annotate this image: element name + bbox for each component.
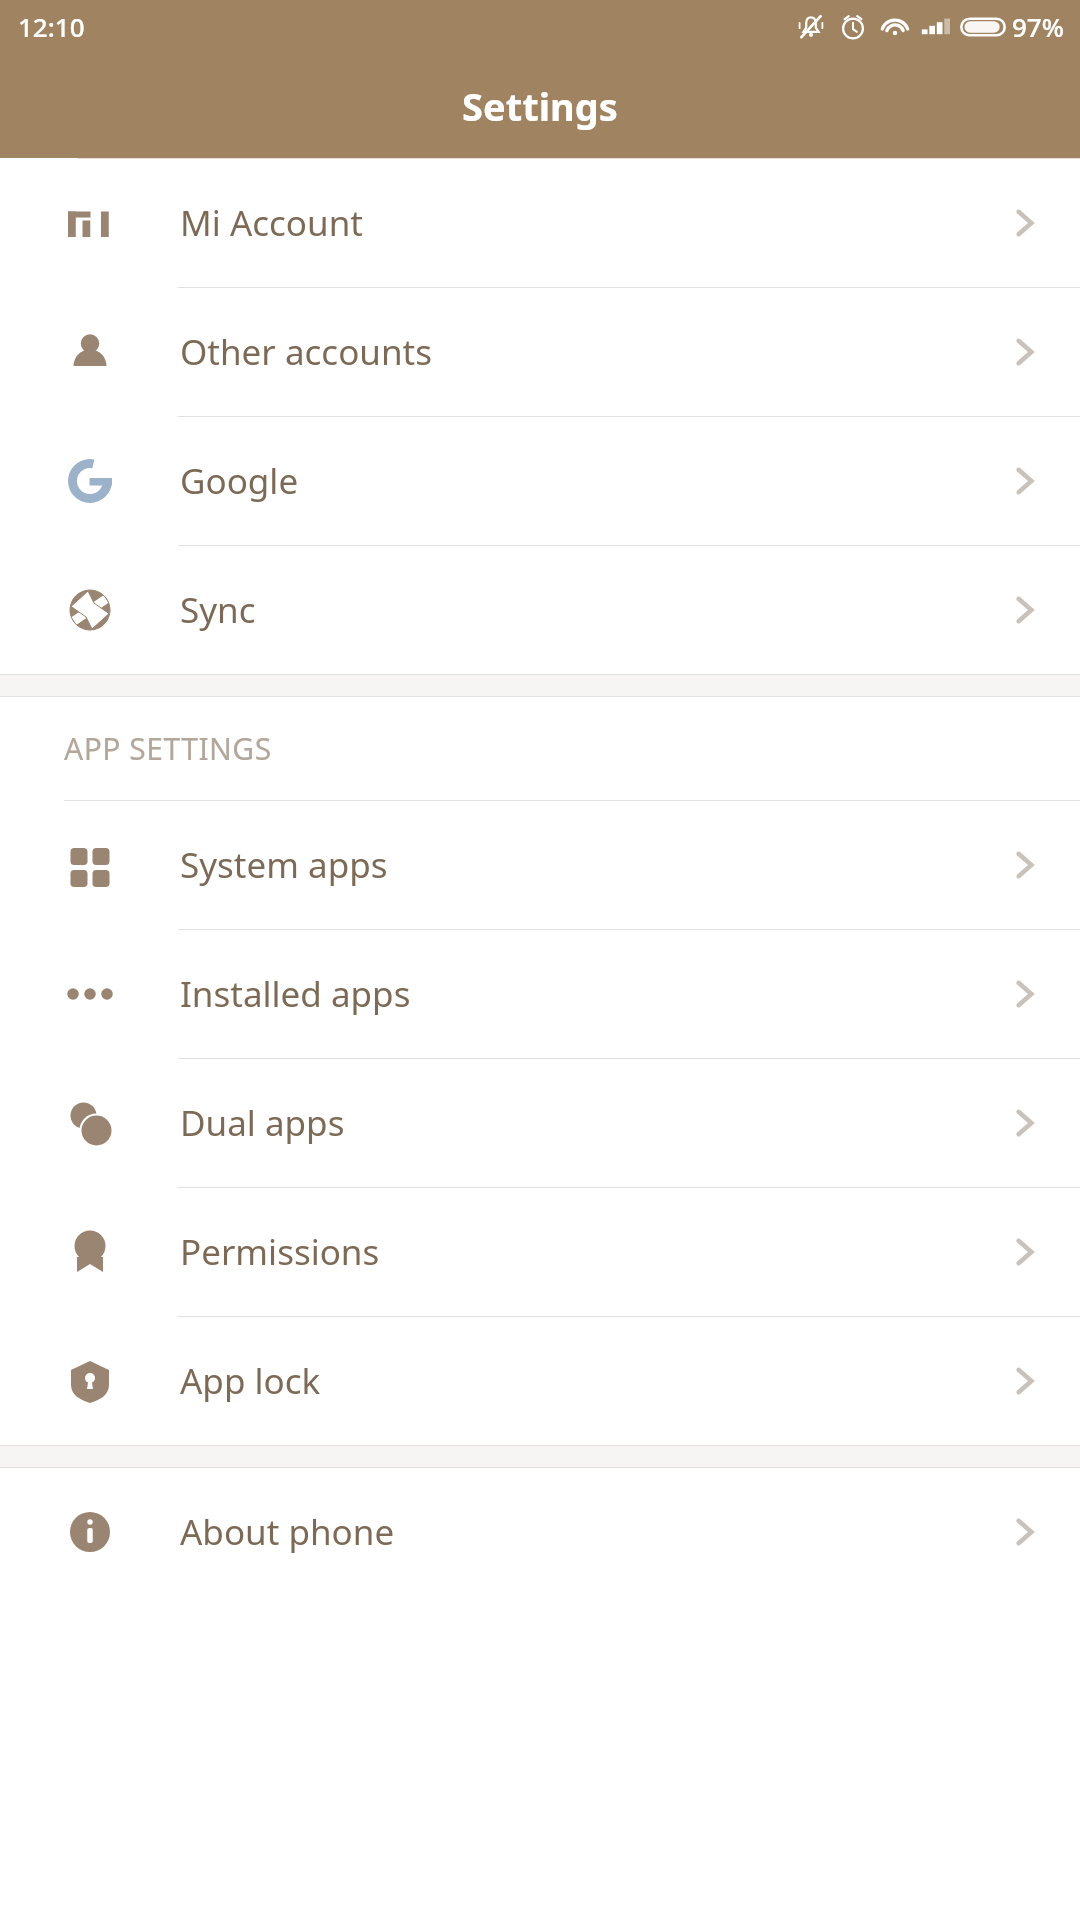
button[interactable]: Google	[0, 417, 1080, 545]
staticText: Settings	[462, 80, 618, 132]
button[interactable]: System apps	[0, 801, 1080, 929]
staticText: Other accounts	[180, 328, 432, 376]
staticText: 97%	[1012, 9, 1064, 44]
staticText: Installed apps	[180, 970, 411, 1018]
staticText: App lock	[180, 1357, 321, 1405]
staticText: System apps	[180, 841, 388, 889]
button[interactable]: Sync	[0, 546, 1080, 674]
button[interactable]: App lock	[0, 1317, 1080, 1445]
button[interactable]: Mi Account	[0, 159, 1080, 287]
staticText: APP SETTINGS	[64, 728, 272, 769]
staticText: Permissions	[180, 1228, 380, 1276]
staticText: Sync	[180, 586, 256, 634]
button[interactable]: Dual apps	[0, 1059, 1080, 1187]
staticText: About phone	[180, 1508, 395, 1556]
staticText: Mi Account	[180, 199, 363, 247]
staticText: Dual apps	[180, 1099, 345, 1147]
button[interactable]: Permissions	[0, 1188, 1080, 1316]
button[interactable]: About phone	[0, 1468, 1080, 1596]
staticText: 12:10	[18, 9, 85, 44]
button[interactable]: Other accounts	[0, 288, 1080, 416]
staticText: Google	[180, 457, 299, 505]
button[interactable]: Installed apps	[0, 930, 1080, 1058]
